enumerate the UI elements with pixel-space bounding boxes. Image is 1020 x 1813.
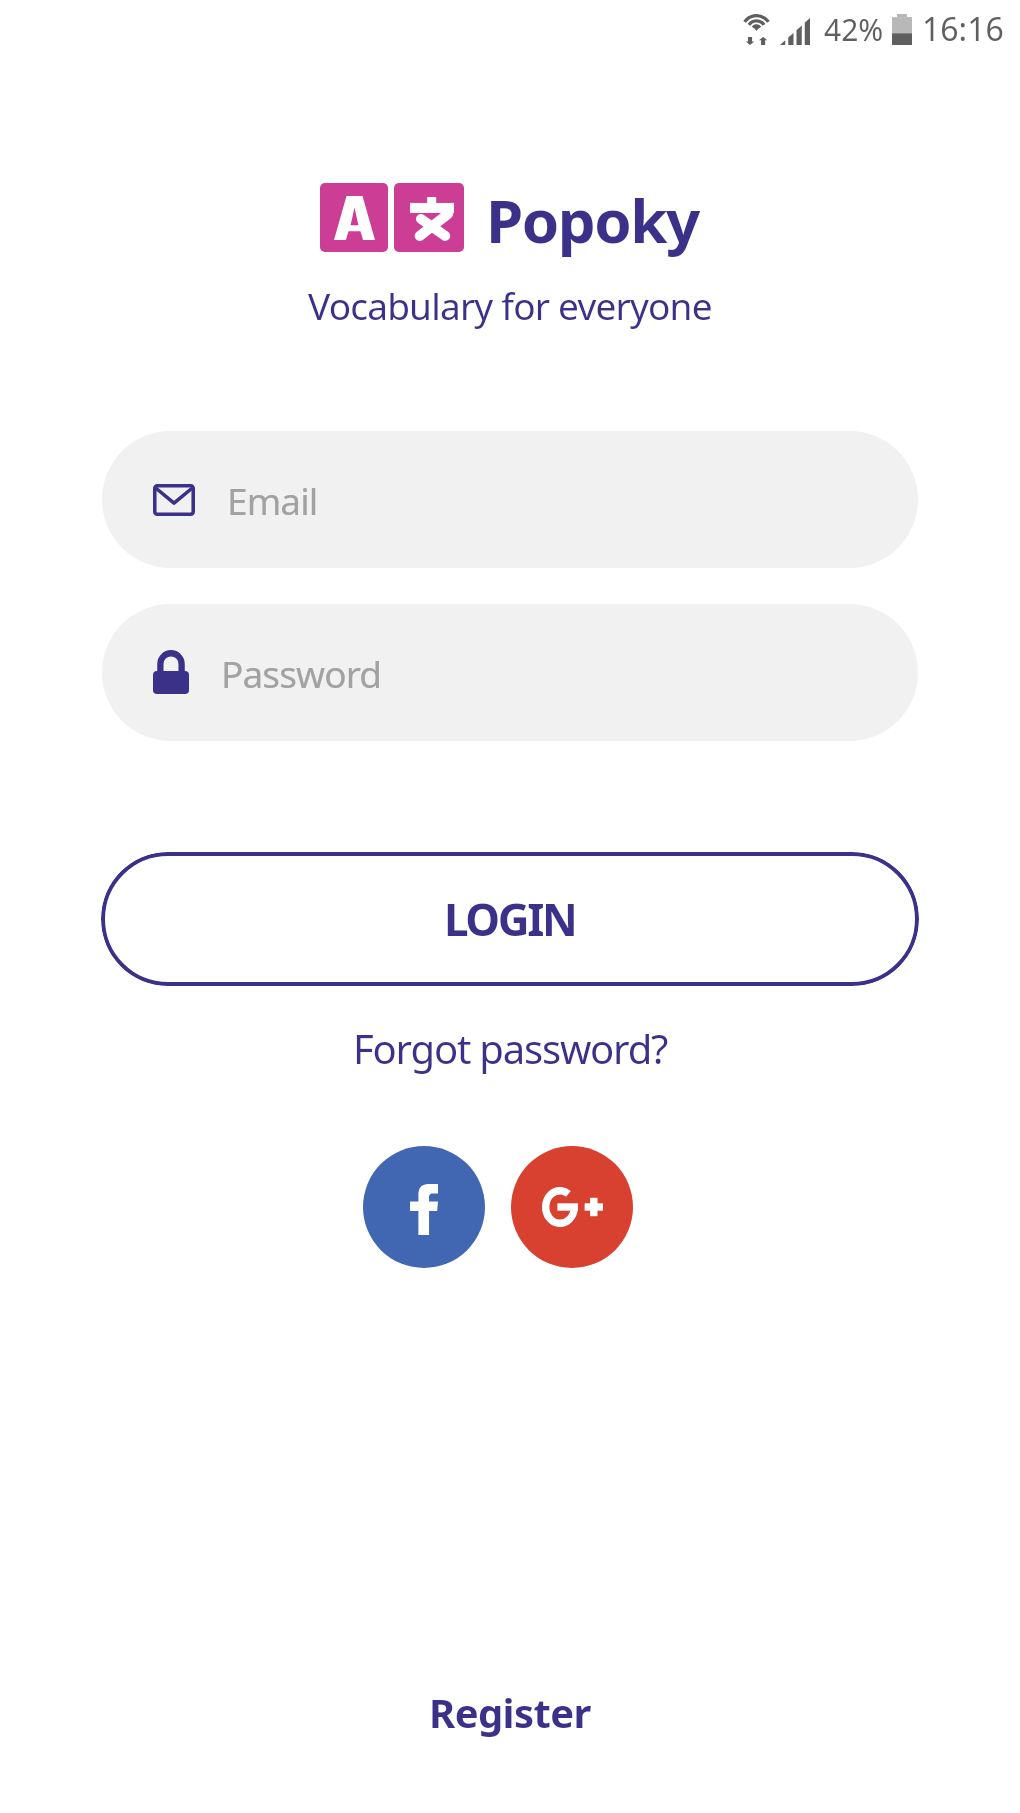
button[interactable]: Forgot password? [335, 1011, 686, 1085]
staticText: Forgot password? [353, 1021, 668, 1075]
button[interactable]: Password [102, 604, 918, 741]
staticText: LOGIN [444, 889, 576, 949]
button[interactable]: Sign in with Google Plus [511, 1146, 633, 1268]
button[interactable]: LOGIN [101, 852, 919, 986]
staticText: Popoky [486, 179, 699, 261]
button[interactable]: Register [403, 1673, 617, 1751]
staticText: 42% [824, 9, 884, 50]
staticText: Password [221, 648, 382, 698]
staticText: Email [227, 475, 318, 525]
staticText: 16:16 [922, 7, 1004, 51]
button[interactable]: Sign in with Facebook [363, 1146, 485, 1268]
staticText: Register [429, 1685, 591, 1739]
button[interactable]: Email [102, 431, 918, 568]
staticText: Vocabulary for everyone [308, 280, 712, 330]
